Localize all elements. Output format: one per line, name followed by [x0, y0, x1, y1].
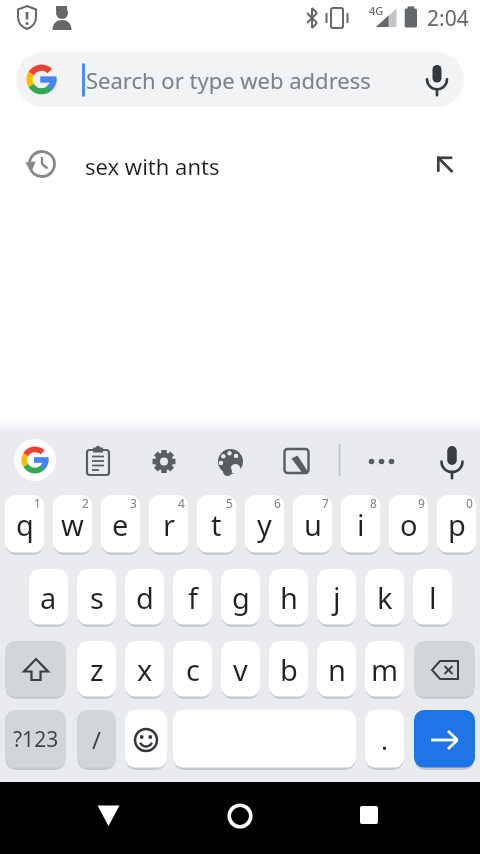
button[interactable]: Search or type web address [16, 52, 464, 107]
button[interactable] [5, 641, 66, 698]
button[interactable]: q [5, 495, 44, 554]
staticText: Search or type web address [86, 65, 371, 95]
staticText: x [137, 650, 153, 689]
staticText: s [90, 578, 104, 617]
staticText: o [400, 505, 418, 544]
button[interactable]: w [53, 495, 92, 554]
button[interactable]: ?123 [5, 710, 66, 769]
button[interactable] [329, 782, 409, 854]
staticText: sex with ants [85, 151, 220, 181]
button[interactable] [125, 710, 167, 769]
button[interactable]: c [173, 641, 212, 698]
button[interactable] [173, 710, 356, 769]
staticText: l [429, 578, 437, 617]
staticText: w [61, 505, 84, 544]
button[interactable]: d [125, 569, 164, 626]
button[interactable]: m [365, 641, 404, 698]
button[interactable]: sex with ants [0, 136, 480, 196]
staticText: k [377, 578, 393, 617]
button[interactable]: l [413, 569, 452, 626]
button[interactable]: v [221, 641, 260, 698]
staticText: e [112, 505, 129, 544]
staticText: u [304, 505, 322, 544]
button[interactable]: b [269, 641, 308, 698]
staticText: z [90, 650, 104, 689]
staticText: 1 [34, 495, 41, 511]
staticText: t [211, 505, 222, 544]
button[interactable]: z [77, 641, 116, 698]
staticText: r [163, 505, 175, 544]
staticText: j [333, 578, 341, 617]
button[interactable]: g [221, 569, 260, 626]
staticText: 4G [369, 3, 384, 18]
staticText: c [186, 650, 200, 689]
staticText: q [16, 505, 34, 544]
staticText: 3 [130, 495, 137, 511]
button[interactable]: y [245, 495, 284, 554]
staticText: 2 [82, 495, 89, 511]
button[interactable] [414, 710, 475, 769]
button[interactable]: u [293, 495, 332, 554]
staticText: 0 [466, 495, 473, 511]
staticText: d [136, 578, 154, 617]
staticText: f [188, 578, 198, 617]
staticText: a [40, 578, 57, 617]
staticText: p [448, 505, 466, 544]
staticText: v [233, 650, 248, 689]
staticText: 4 [178, 495, 185, 511]
button[interactable] [414, 641, 475, 698]
staticText: i [357, 505, 365, 544]
button[interactable]: n [317, 641, 356, 698]
button[interactable] [68, 782, 148, 854]
staticText: b [280, 650, 298, 689]
staticText: n [328, 650, 346, 689]
button[interactable]: f [173, 569, 212, 626]
staticText: / [92, 723, 101, 756]
staticText: y [257, 505, 272, 544]
button[interactable] [14, 439, 56, 481]
button[interactable]: . [365, 710, 404, 769]
staticText: 6 [274, 495, 281, 511]
staticText: h [280, 578, 298, 617]
button[interactable]: p [437, 495, 476, 554]
staticText: ?123 [13, 725, 59, 754]
button[interactable]: k [365, 569, 404, 626]
button[interactable]: o [389, 495, 428, 554]
staticText: 7 [322, 495, 329, 511]
button[interactable]: h [269, 569, 308, 626]
staticText: 9 [418, 495, 425, 511]
button[interactable]: x [125, 641, 164, 698]
staticText: 8 [370, 495, 377, 511]
button[interactable]: t [197, 495, 236, 554]
button[interactable]: i [341, 495, 380, 554]
staticText: . [381, 722, 388, 757]
staticText: m [371, 650, 399, 689]
button[interactable]: e [101, 495, 140, 554]
staticText: g [232, 578, 250, 617]
staticText: 5 [226, 495, 233, 511]
button[interactable] [200, 782, 280, 854]
staticText: 2:04 [427, 4, 469, 33]
button[interactable]: a [29, 569, 68, 626]
button[interactable]: s [77, 569, 116, 626]
button[interactable]: j [317, 569, 356, 626]
button[interactable]: r [149, 495, 188, 554]
button[interactable]: / [77, 710, 116, 769]
